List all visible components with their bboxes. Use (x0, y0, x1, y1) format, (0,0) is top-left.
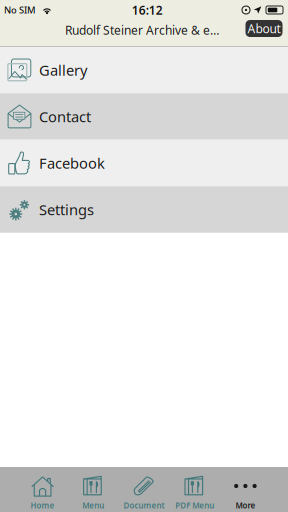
staticText: Settings (39, 200, 94, 219)
button[interactable]: Home (17, 467, 68, 512)
button[interactable]: Document (119, 467, 169, 512)
staticText: More (235, 500, 255, 511)
button[interactable]: About (245, 20, 282, 37)
button[interactable]: Settings (0, 186, 288, 233)
staticText: PDF Menu (175, 500, 214, 511)
button[interactable]: PDF Menu (169, 467, 220, 512)
staticText: Contact (39, 107, 91, 126)
staticText: Document (123, 500, 164, 511)
staticText: Rudolf Steiner Archive & e… (65, 22, 219, 38)
staticText: Menu (82, 500, 104, 511)
button[interactable]: Menu (68, 467, 119, 512)
button[interactable]: Contact (0, 93, 288, 140)
staticText: 16:12 (132, 2, 163, 18)
staticText: Facebook (39, 153, 105, 173)
button[interactable]: More (220, 467, 271, 512)
staticText: No SIM (4, 4, 36, 16)
staticText: Gallery (39, 60, 87, 80)
staticText: About (247, 20, 280, 36)
staticText: Home (31, 500, 55, 511)
button[interactable]: Gallery (0, 47, 288, 93)
button[interactable]: Facebook (0, 140, 288, 186)
